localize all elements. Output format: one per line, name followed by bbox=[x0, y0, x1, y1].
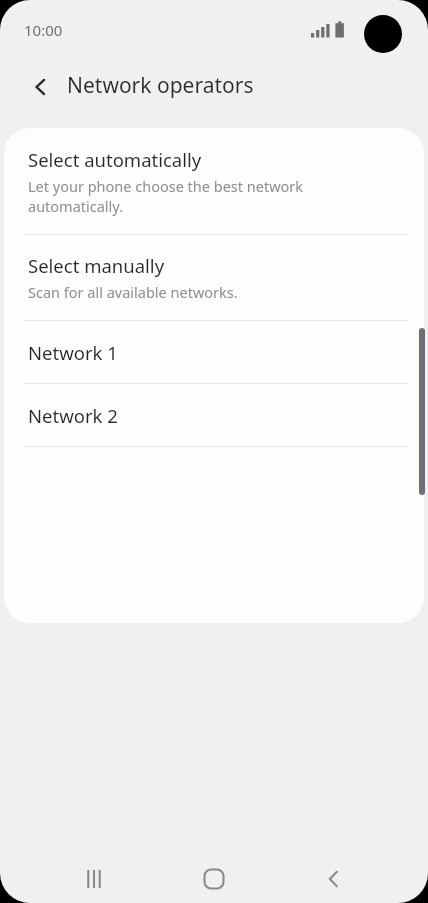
staticText: 10:00 bbox=[24, 20, 63, 40]
button[interactable]: Network 2 bbox=[4, 384, 424, 446]
staticText: Select automatically bbox=[28, 147, 202, 172]
button[interactable]: Home bbox=[186, 851, 242, 903]
staticText: Let your phone choose the best network bbox=[28, 176, 304, 196]
button[interactable]: Recent apps bbox=[66, 851, 122, 903]
staticText: Scan for all available networks. bbox=[28, 282, 238, 302]
staticText: automatically. bbox=[28, 196, 124, 216]
button[interactable]: Network 1 bbox=[4, 321, 424, 383]
button[interactable]: Back bbox=[18, 64, 64, 110]
staticText: Select manually bbox=[28, 253, 165, 278]
button[interactable]: Back bbox=[306, 851, 362, 903]
staticText: Network 2 bbox=[28, 403, 118, 428]
staticText: Network 1 bbox=[28, 340, 118, 365]
staticText: Network operators bbox=[67, 71, 254, 100]
button[interactable]: Select automatically bbox=[4, 128, 424, 234]
button[interactable]: Select manually bbox=[4, 235, 424, 320]
